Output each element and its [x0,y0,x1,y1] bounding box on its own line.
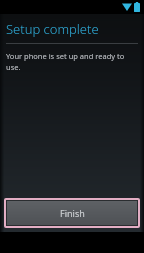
staticText: Setup complete [6,20,99,38]
button[interactable]: Finish [4,198,140,228]
staticText: Your phone is set up and ready to use. [6,51,136,72]
other: Wi-Fi signal [122,3,132,11]
other: Battery [134,2,140,12]
staticText: Finish [60,207,85,219]
